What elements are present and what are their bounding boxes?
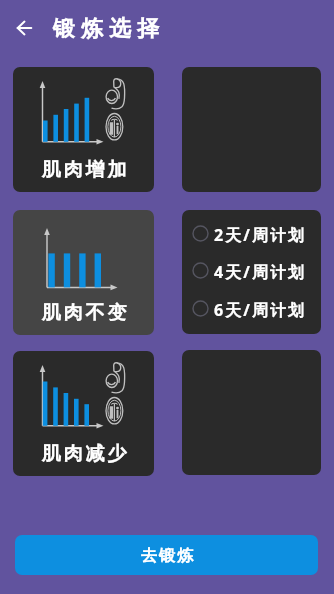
staticText: 锻炼选择 [50, 15, 162, 43]
button[interactable]: 去锻炼 [15, 535, 318, 575]
staticText: 4天/周计划 [214, 261, 306, 283]
staticText: 肌肉不变 [40, 301, 128, 325]
button[interactable]: 肌肉增加 [13, 67, 154, 192]
button[interactable]: 2天/周计划 [182, 223, 321, 247]
staticText: 肌肉减少 [40, 442, 128, 466]
staticText: 肌肉增加 [40, 158, 128, 182]
staticText: 去锻炼 [140, 546, 194, 566]
staticText: 2天/周计划 [214, 224, 306, 246]
button[interactable]: 肌肉减少 [13, 351, 154, 476]
staticText: 6天/周计划 [214, 299, 306, 321]
button[interactable]: 肌肉不变 [13, 210, 154, 335]
button[interactable]: 4天/周计划 [182, 260, 321, 284]
button[interactable]: 6天/周计划 [182, 298, 321, 322]
button[interactable]: Back [11, 14, 38, 41]
